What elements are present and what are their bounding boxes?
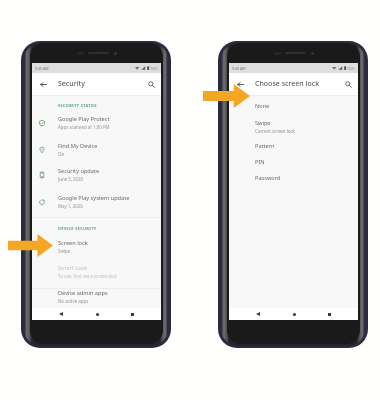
button[interactable]: Pattern xyxy=(229,139,358,155)
staticText: June 5, 2020 xyxy=(58,176,84,182)
staticText: Security xyxy=(58,79,85,89)
button[interactable]: Search xyxy=(145,78,157,90)
button[interactable]: Device admin apps xyxy=(32,284,161,306)
staticText: To use, first set a screen lock xyxy=(58,273,117,279)
button[interactable]: Back xyxy=(55,308,67,320)
staticText: Apps scanned at 1:00 PM xyxy=(58,124,110,130)
button[interactable]: Search xyxy=(342,78,354,90)
staticText: Swipe xyxy=(255,119,271,127)
staticText: None xyxy=(255,102,270,110)
button[interactable]: Find My Device xyxy=(32,136,161,160)
staticText: DEVICE SECURITY xyxy=(58,226,97,231)
button[interactable]: Swipe xyxy=(229,116,358,136)
staticText: 100% xyxy=(149,66,158,71)
staticText: Google Play system update xyxy=(58,194,130,202)
staticText: Choose screen lock xyxy=(255,79,320,89)
staticText: May 1, 2020 xyxy=(58,203,83,209)
staticText: Swipe xyxy=(58,248,71,254)
button[interactable]: Recent apps xyxy=(126,308,138,320)
button[interactable]: Back xyxy=(252,308,264,320)
button[interactable]: Google Play Protect xyxy=(32,109,161,133)
staticText: 9:30 AM xyxy=(35,66,49,71)
staticText: Password xyxy=(255,174,281,182)
button[interactable]: Home xyxy=(288,308,300,320)
button[interactable]: Smart Lock xyxy=(32,259,161,281)
staticText: On xyxy=(58,151,65,157)
staticText: PIN xyxy=(255,158,265,166)
staticText: Pattern xyxy=(255,142,275,150)
button[interactable]: Google Play system update xyxy=(32,188,161,212)
button[interactable]: Home xyxy=(91,308,103,320)
button[interactable]: Recent apps xyxy=(323,308,335,320)
button[interactable]: Back xyxy=(234,78,246,90)
button[interactable]: Security update xyxy=(32,161,161,185)
staticText: 9:30 AM xyxy=(232,66,246,71)
staticText: 100% xyxy=(346,66,355,71)
staticText: Screen lock xyxy=(58,239,88,247)
button[interactable]: None xyxy=(229,99,358,115)
staticText: Security update xyxy=(58,167,100,175)
staticText: Current screen lock xyxy=(255,128,295,134)
staticText: Device admin apps xyxy=(58,289,108,297)
button[interactable]: Password xyxy=(229,171,358,187)
staticText: Find My Device xyxy=(58,142,98,150)
staticText: Smart Lock xyxy=(58,264,88,272)
staticText: Google Play Protect xyxy=(58,115,110,123)
staticText: No active apps xyxy=(58,298,89,304)
staticText: SECURITY STATUS xyxy=(58,103,97,108)
button[interactable]: Back xyxy=(37,78,49,90)
button[interactable]: PIN xyxy=(229,155,358,171)
button[interactable]: Screen lock xyxy=(32,234,161,256)
